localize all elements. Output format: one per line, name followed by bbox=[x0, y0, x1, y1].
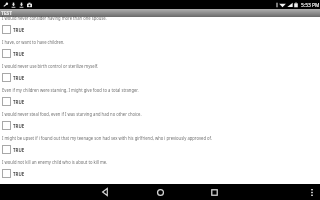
staticText: TEST bbox=[1, 9, 12, 17]
button[interactable]: Recent apps bbox=[204, 184, 224, 200]
staticText: TRUE bbox=[13, 74, 24, 81]
staticText: I would never steal food, even if I was … bbox=[2, 110, 142, 117]
staticText: TRUE bbox=[13, 50, 24, 57]
staticText: I would not kill an enemy child who is a… bbox=[2, 158, 108, 165]
staticText: TRUE bbox=[13, 98, 24, 105]
staticText: I would never use birth control or steri… bbox=[2, 62, 99, 69]
button[interactable]: TRUE bbox=[0, 121, 320, 134]
staticText: Even if my children were starving, I mig… bbox=[2, 86, 139, 93]
button[interactable]: TRUE bbox=[0, 25, 320, 38]
button[interactable]: TRUE bbox=[0, 97, 320, 110]
staticText: I have, or want to have children. bbox=[2, 38, 65, 45]
staticText: TRUE bbox=[13, 146, 24, 153]
button[interactable]: Home bbox=[150, 184, 170, 200]
button[interactable]: TRUE bbox=[0, 145, 320, 158]
staticText: 5:53 PM bbox=[301, 1, 320, 9]
button[interactable]: TRUE bbox=[0, 49, 320, 62]
staticText: TRUE bbox=[13, 26, 24, 33]
staticText: TRUE bbox=[13, 170, 24, 177]
button[interactable]: More options bbox=[304, 184, 320, 200]
staticText: I would never consider having more than … bbox=[2, 14, 107, 21]
staticText: I might be upset if i found out that my … bbox=[2, 134, 212, 141]
button[interactable]: TRUE bbox=[0, 169, 320, 182]
button[interactable]: TRUE bbox=[0, 73, 320, 86]
button[interactable]: Back bbox=[95, 184, 115, 200]
button[interactable]: TEST bbox=[0, 9, 320, 17]
staticText: TRUE bbox=[13, 122, 24, 129]
